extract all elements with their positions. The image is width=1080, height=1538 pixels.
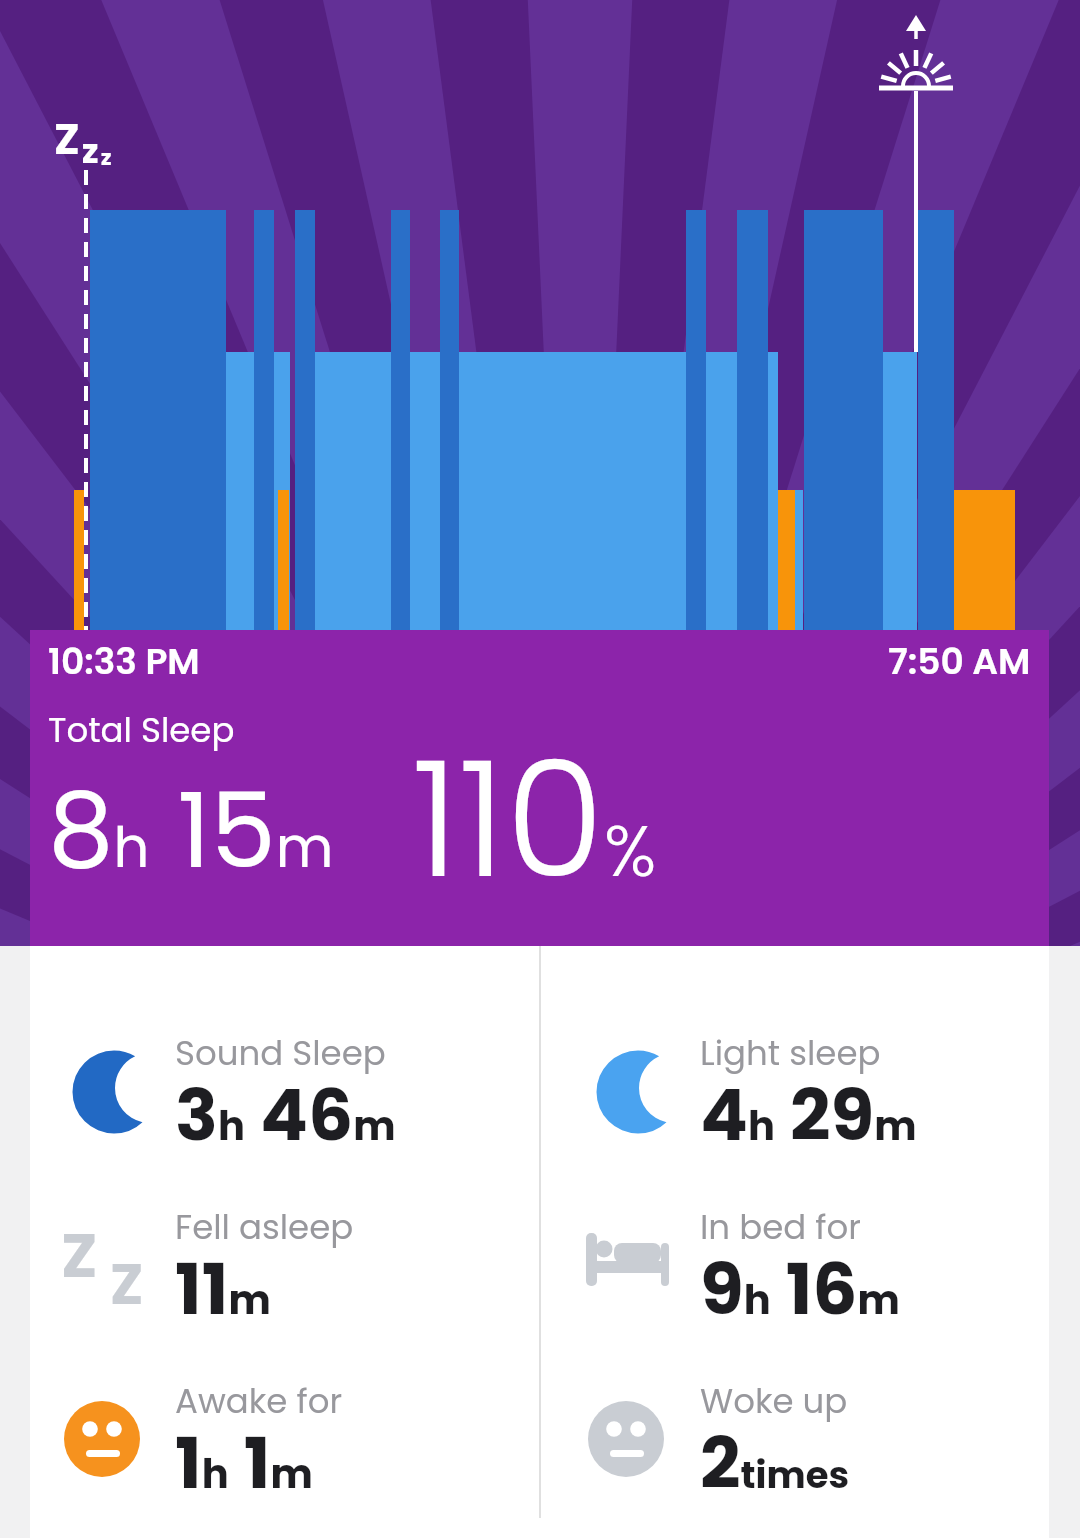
staticText: 2times: [700, 1413, 850, 1512]
button[interactable]: Awake for: [60, 1364, 515, 1516]
staticText: z: [82, 128, 99, 174]
staticText: 4h 29m: [700, 1065, 917, 1164]
staticText: 110%: [412, 708, 657, 932]
button[interactable]: Light sleep: [584, 1016, 1039, 1168]
staticText: z: [101, 143, 112, 172]
staticText: In bed for: [700, 1203, 861, 1251]
button[interactable]: Sound Sleep: [60, 1016, 515, 1168]
staticText: Z: [54, 109, 80, 169]
staticText: 7:50 AM: [888, 636, 1031, 686]
staticText: 11m: [175, 1239, 271, 1338]
staticText: 9h 16m: [700, 1239, 900, 1338]
staticText: Awake for: [175, 1377, 343, 1425]
staticText: 3h 46m: [175, 1065, 396, 1164]
staticText: Fell asleep: [175, 1203, 354, 1251]
staticText: Woke up: [700, 1377, 848, 1425]
staticText: 10:33 PM: [48, 636, 200, 686]
button[interactable]: Woke up: [584, 1364, 1039, 1516]
staticText: Light sleep: [700, 1029, 881, 1077]
staticText: Sound Sleep: [175, 1029, 386, 1077]
staticText: Z: [61, 1213, 98, 1298]
staticText: 8h 15m: [48, 758, 334, 904]
button[interactable]: Z: [60, 1190, 515, 1342]
staticText: Z: [110, 1245, 144, 1323]
staticText: Total Sleep: [48, 706, 235, 754]
button[interactable]: In bed for: [584, 1190, 1039, 1342]
staticText: 1h 1m: [175, 1413, 313, 1512]
